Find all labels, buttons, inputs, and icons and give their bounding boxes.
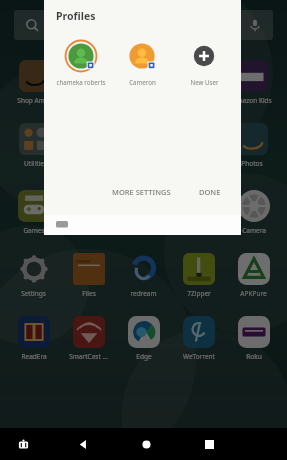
staticText: ReadEra [21, 352, 47, 361]
staticText: APKPure [240, 289, 267, 298]
staticText: redream [130, 289, 157, 298]
staticText: Files [82, 289, 96, 298]
staticText: SmartCast ... [69, 352, 108, 361]
button[interactable]: ReadEra [6, 314, 61, 363]
staticText: 7Zipper [187, 289, 211, 298]
button[interactable]: Amazon Alexa [61, 188, 116, 237]
button[interactable]: Camera [226, 188, 281, 237]
button[interactable]: Email [171, 188, 226, 237]
staticText: Games [23, 226, 45, 235]
staticText: MORE SETTINGS [112, 187, 171, 197]
button[interactable]: Back [68, 429, 98, 459]
button[interactable]: Search [14, 10, 50, 40]
button[interactable]: Files [61, 251, 116, 300]
staticText: Shop Ama... [17, 96, 54, 105]
button[interactable]: Amazon Kids [225, 58, 279, 107]
button[interactable]: Edge [116, 314, 171, 363]
button[interactable]: Recent apps [194, 429, 224, 459]
button[interactable]: Photos [225, 121, 279, 170]
button[interactable]: Games [6, 188, 61, 237]
button[interactable]: Utilities [8, 121, 62, 170]
staticText: Amazon Alexa [67, 226, 111, 235]
button[interactable]: DONE [193, 181, 227, 203]
button[interactable]: WeTorrent [171, 314, 226, 363]
button[interactable]: New User [173, 37, 235, 88]
button[interactable]: Settings [6, 251, 61, 300]
staticText: WeTorrent [183, 352, 215, 361]
staticText: Roku [246, 352, 262, 361]
staticText: Photos [241, 159, 263, 168]
staticText: Settings [21, 289, 46, 298]
button[interactable]: chameka roberts [50, 37, 111, 88]
button[interactable]: Roku [226, 314, 281, 363]
button[interactable]: SmartCast ... [61, 314, 116, 363]
staticText: Cameron [129, 78, 156, 86]
button[interactable]: Screenshot [10, 431, 36, 457]
button[interactable]: MORE SETTINGS [106, 181, 177, 203]
staticText: Camera [242, 226, 266, 235]
staticText: New User [190, 78, 219, 86]
button[interactable]: APKPure [226, 251, 281, 300]
staticText: Edge [136, 352, 152, 361]
button[interactable]: redream [116, 251, 171, 300]
button[interactable]: Shop Ama... [8, 58, 62, 107]
staticText: Utilities [24, 159, 47, 168]
button[interactable]: Home [131, 429, 161, 459]
button[interactable]: Voice search [237, 10, 273, 40]
staticText: chameka roberts [56, 78, 106, 86]
button[interactable]: Goodreads [116, 188, 171, 237]
button[interactable]: 7Zipper [171, 251, 226, 300]
staticText: DONE [199, 187, 221, 197]
button[interactable]: Cameron [111, 37, 173, 88]
staticText: Profiles [56, 9, 96, 23]
staticText: Amazon Kids [232, 96, 272, 105]
